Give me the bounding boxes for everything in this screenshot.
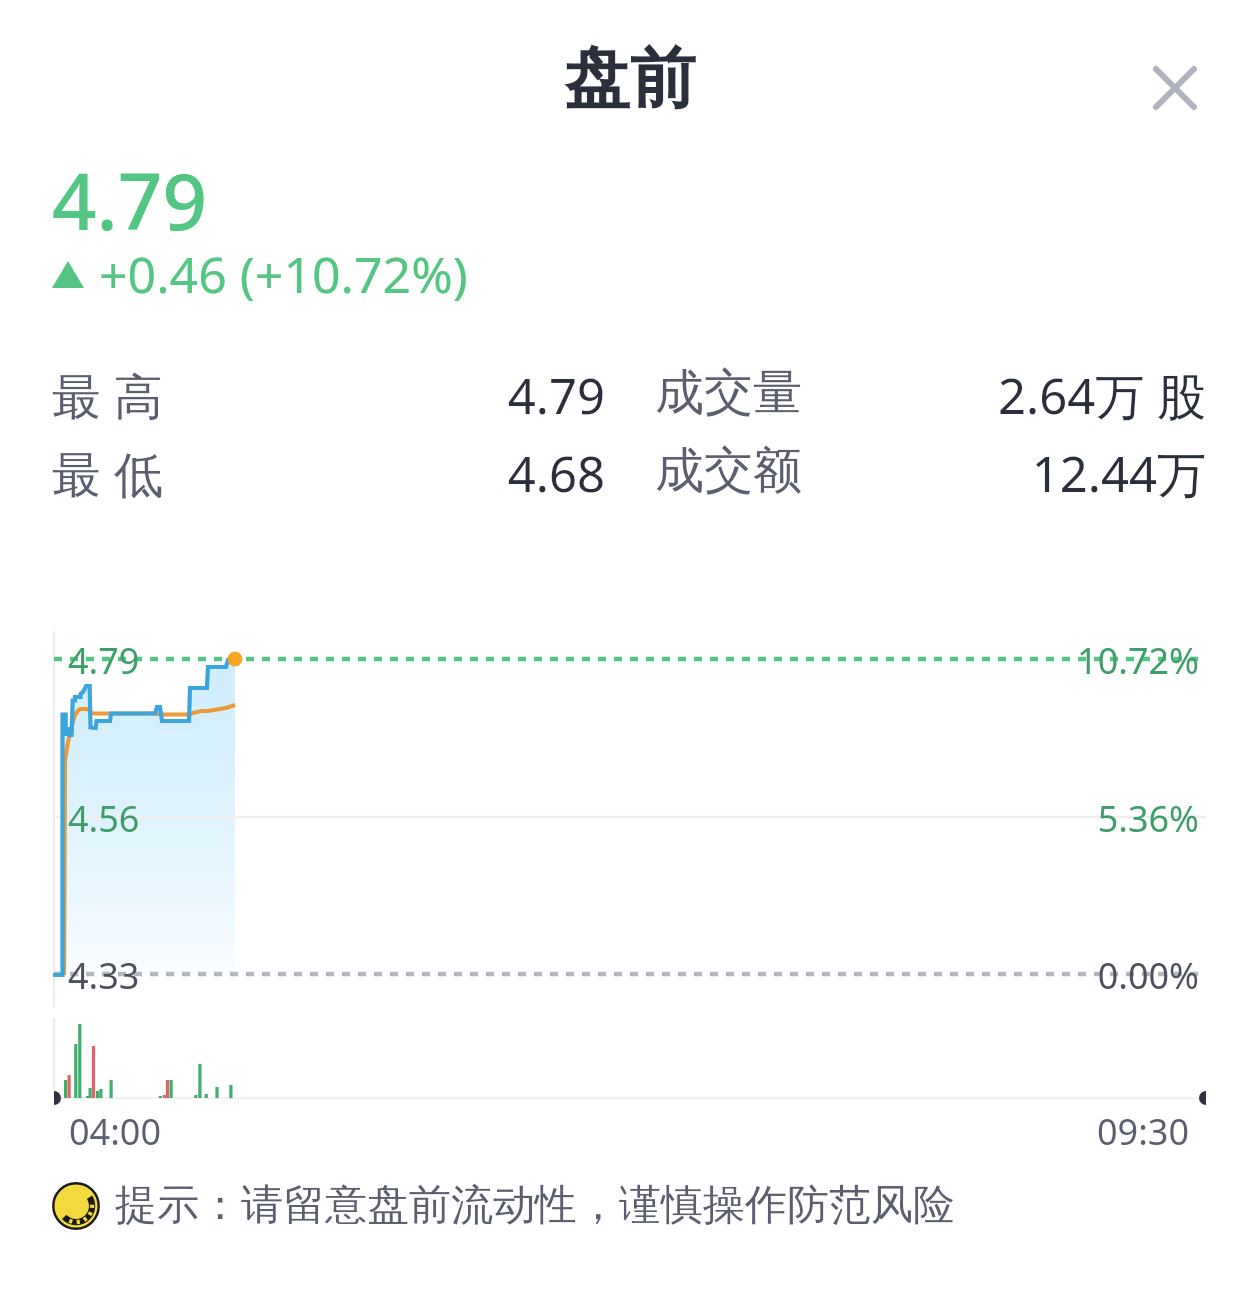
button[interactable]: Close xyxy=(1131,44,1219,132)
staticText: 12.44万 xyxy=(802,440,1206,507)
staticText: 5.36% xyxy=(799,794,1199,843)
staticText: 提示：请留意盘前流动性，谨慎操作防范风险 xyxy=(115,1179,955,1232)
staticText: 4.68 xyxy=(163,440,605,507)
staticText: 成交额 xyxy=(655,440,802,502)
staticText: 0.00% xyxy=(799,951,1199,1000)
staticText: 4.33 xyxy=(68,951,140,1000)
staticText: 成交量 xyxy=(655,362,802,424)
staticText: +0.46 (+10.72%) xyxy=(99,240,468,308)
staticText: 10.72% xyxy=(799,636,1199,685)
staticText: 4.79 xyxy=(52,147,208,253)
staticText: 4.79 xyxy=(163,362,605,429)
staticText: 09:30 xyxy=(789,1107,1189,1156)
staticText: 4.56 xyxy=(68,794,140,843)
staticText: 4.79 xyxy=(68,636,140,685)
staticText: 最 高 xyxy=(52,362,163,429)
staticText: 最 低 xyxy=(52,440,163,507)
staticText: 盘前 xyxy=(564,37,696,120)
staticText: 04:00 xyxy=(69,1107,162,1156)
staticText: 2.64万 股 xyxy=(802,362,1206,429)
